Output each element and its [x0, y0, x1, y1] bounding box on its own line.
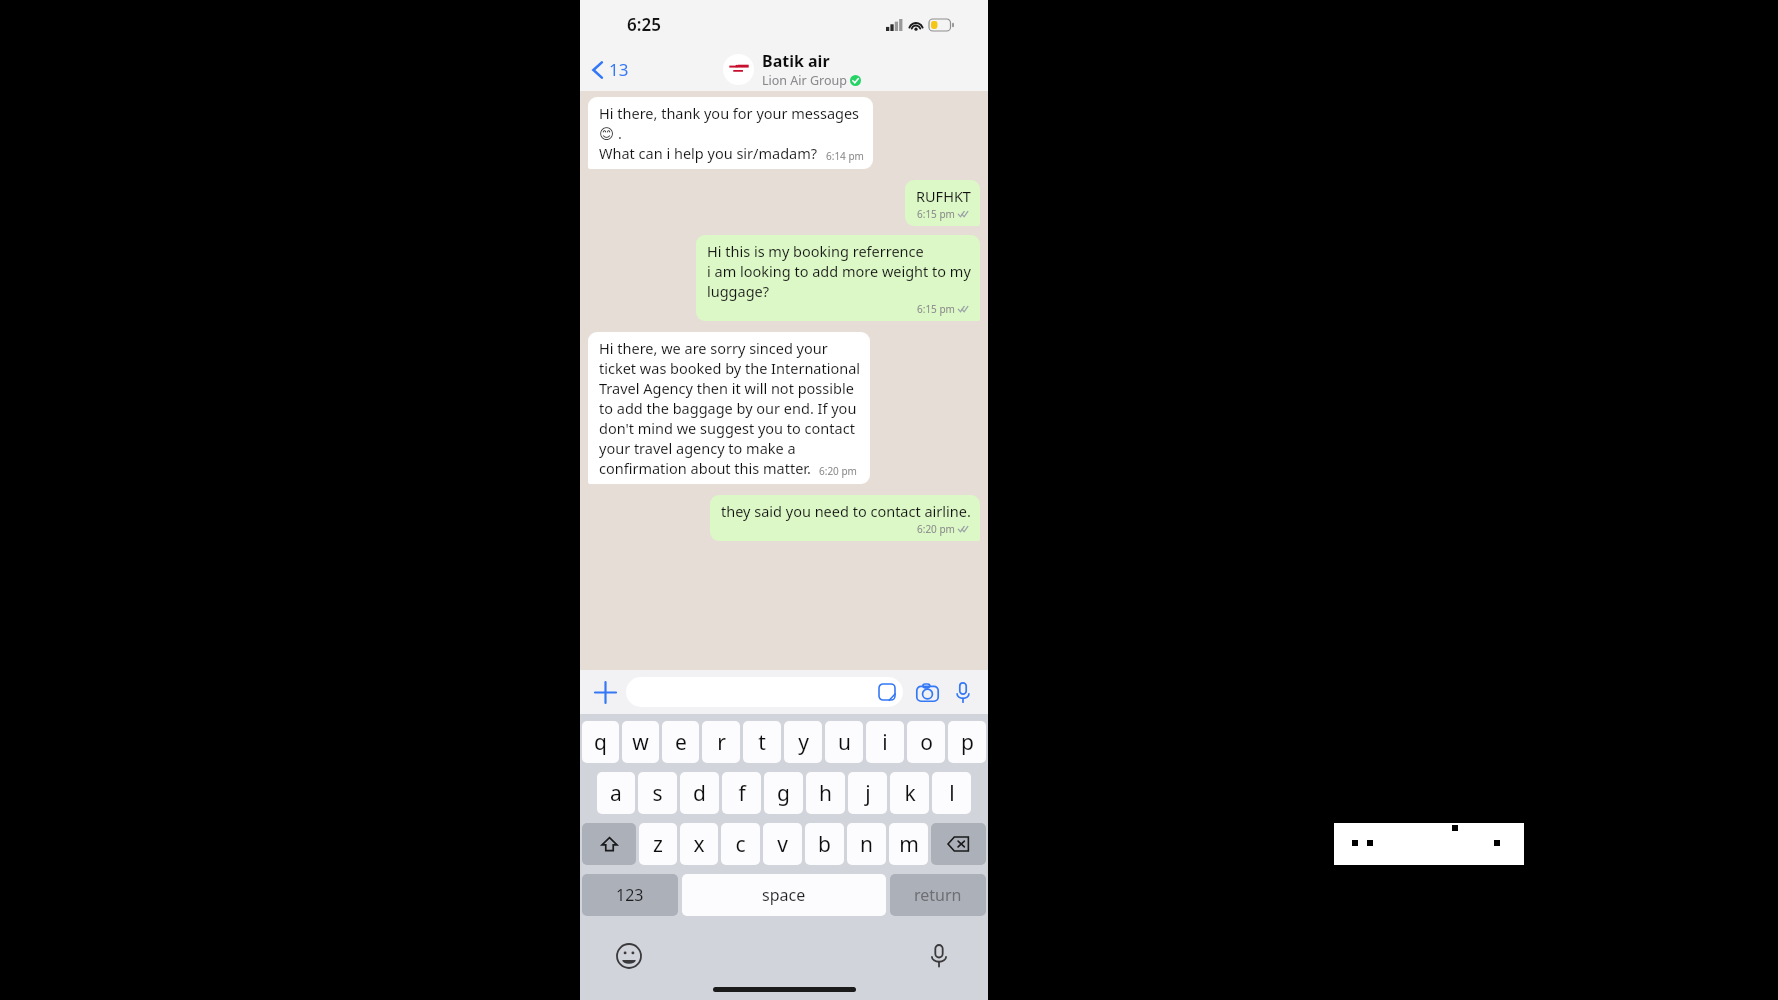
staticText: i	[882, 728, 888, 757]
button[interactable]: Voice message	[948, 677, 978, 707]
button[interactable]: v	[763, 823, 802, 865]
staticText: p	[961, 728, 974, 757]
button[interactable]: r	[702, 721, 740, 763]
staticText: Lion Air Group	[762, 72, 847, 89]
staticText: g	[777, 779, 790, 808]
button[interactable]: space	[682, 874, 886, 916]
button[interactable]: i	[866, 721, 904, 763]
button[interactable]: w	[622, 721, 659, 763]
button[interactable]: Emoji	[612, 939, 646, 973]
staticText: return	[914, 884, 962, 906]
staticText: b	[818, 830, 831, 859]
staticText: Batik air	[762, 50, 830, 72]
staticText: a	[610, 779, 622, 808]
button[interactable]: 123	[582, 874, 678, 916]
staticText: u	[838, 728, 851, 757]
button[interactable]: Dictate	[922, 939, 956, 973]
button[interactable]: o	[907, 721, 945, 763]
staticText: 6:20 pm	[819, 464, 857, 478]
staticText: h	[819, 779, 832, 808]
staticText: luggage?	[707, 281, 770, 301]
button[interactable]: Batik air	[723, 50, 861, 89]
button[interactable]: d	[680, 772, 719, 814]
staticText: RUFHKT	[916, 186, 971, 206]
button[interactable]: Backspace	[931, 823, 986, 865]
staticText: d	[693, 779, 706, 808]
button[interactable]: j	[848, 772, 887, 814]
staticText: confirmation about this matter.	[599, 458, 811, 478]
staticText: t	[758, 728, 766, 757]
button[interactable]: they said you need to contact airline.	[710, 495, 980, 541]
staticText: 6:25	[627, 13, 661, 36]
staticText: 6:15 pm	[917, 207, 955, 221]
staticText: f	[738, 779, 746, 808]
button[interactable]: m	[889, 823, 928, 865]
other: Stickers	[878, 683, 896, 701]
staticText: v	[777, 830, 788, 859]
button[interactable]: y	[784, 721, 822, 763]
button[interactable]: z	[639, 823, 677, 865]
staticText: 6:14 pm	[826, 149, 864, 163]
button[interactable]: f	[722, 772, 761, 814]
staticText: space	[762, 884, 806, 906]
button[interactable]: h	[806, 772, 845, 814]
staticText: e	[675, 728, 687, 757]
button[interactable]: e	[662, 721, 699, 763]
staticText: 6:15 pm	[917, 302, 955, 316]
staticText: r	[717, 728, 726, 757]
staticText: s	[652, 779, 663, 808]
staticText: k	[904, 779, 916, 808]
button[interactable]: q	[582, 721, 619, 763]
button[interactable]: Camera	[912, 677, 942, 707]
staticText: m	[899, 830, 919, 859]
button[interactable]: Stickers	[626, 677, 903, 707]
button[interactable]: Back	[588, 54, 633, 85]
button[interactable]: Hi there, we are sorry sinced your	[588, 332, 870, 484]
staticText: q	[594, 728, 607, 757]
staticText: 😊 .	[599, 123, 622, 143]
staticText: ticket was booked by the International	[599, 358, 861, 378]
staticText: they said you need to contact airline.	[721, 501, 971, 521]
staticText: o	[920, 728, 933, 757]
button[interactable]: a	[597, 772, 635, 814]
button[interactable]: Shift	[582, 823, 636, 865]
button[interactable]: l	[932, 772, 971, 814]
staticText: j	[865, 779, 871, 808]
staticText: 123	[616, 884, 644, 906]
button[interactable]: b	[805, 823, 844, 865]
staticText: your travel agency to make a	[599, 438, 796, 458]
staticText: i am looking to add more weight to my	[707, 261, 971, 281]
staticText: Hi there, we are sorry sinced your	[599, 338, 828, 358]
staticText: x	[693, 830, 705, 859]
other: Back	[592, 60, 604, 80]
button[interactable]: g	[764, 772, 803, 814]
staticText: don't mind we suggest you to contact	[599, 418, 855, 438]
staticText: 6:20 pm	[917, 522, 955, 536]
staticText: z	[653, 830, 663, 859]
staticText: y	[798, 728, 809, 757]
button[interactable]: Attach	[590, 677, 620, 707]
staticText: Hi there, thank you for your messages	[599, 103, 860, 123]
button[interactable]: u	[825, 721, 863, 763]
staticText: w	[632, 728, 649, 757]
button[interactable]: Hi this is my booking referrence	[696, 235, 980, 321]
staticText: n	[860, 830, 873, 859]
staticText: Travel Agency then it will not possible	[599, 378, 854, 398]
button[interactable]: Hi there, thank you for your messages	[588, 97, 873, 169]
staticText: to add the baggage by our end. If you	[599, 398, 857, 418]
staticText: c	[735, 830, 746, 859]
staticText: 13	[609, 58, 629, 81]
button[interactable]: t	[743, 721, 781, 763]
button[interactable]: n	[847, 823, 886, 865]
button[interactable]: RUFHKT	[905, 180, 980, 226]
button[interactable]: k	[890, 772, 929, 814]
button[interactable]: x	[680, 823, 718, 865]
button[interactable]: s	[638, 772, 677, 814]
staticText: l	[949, 779, 955, 808]
button[interactable]: p	[948, 721, 986, 763]
button[interactable]: return	[890, 874, 986, 916]
staticText: Hi this is my booking referrence	[707, 241, 924, 261]
staticText: What can i help you sir/madam?	[599, 143, 818, 163]
button[interactable]: c	[721, 823, 760, 865]
